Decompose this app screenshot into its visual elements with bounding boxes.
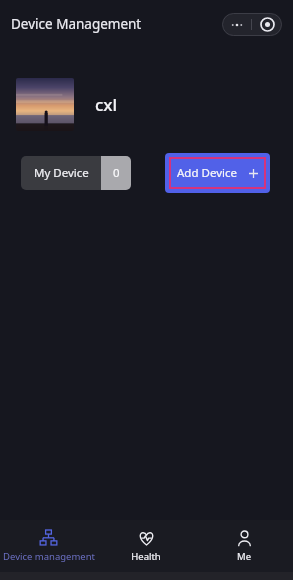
staticText: Health	[131, 550, 161, 563]
staticText: Add Device	[177, 165, 237, 181]
staticText: Device management	[3, 550, 95, 563]
staticText: 0	[113, 165, 120, 181]
button[interactable]: Health	[97, 520, 195, 572]
button[interactable]: More options	[222, 13, 251, 36]
button[interactable]: Add Device	[165, 153, 270, 193]
button[interactable]: Scan	[252, 13, 282, 36]
button[interactable]: cxl	[16, 78, 293, 131]
staticText: Me	[237, 550, 251, 563]
button[interactable]: Me	[195, 520, 293, 572]
staticText: cxl	[95, 93, 118, 116]
staticText: My Device	[34, 165, 89, 181]
button[interactable]: My Device	[21, 156, 131, 190]
staticText: Device Management	[11, 15, 142, 33]
button[interactable]: Device management	[0, 520, 97, 572]
